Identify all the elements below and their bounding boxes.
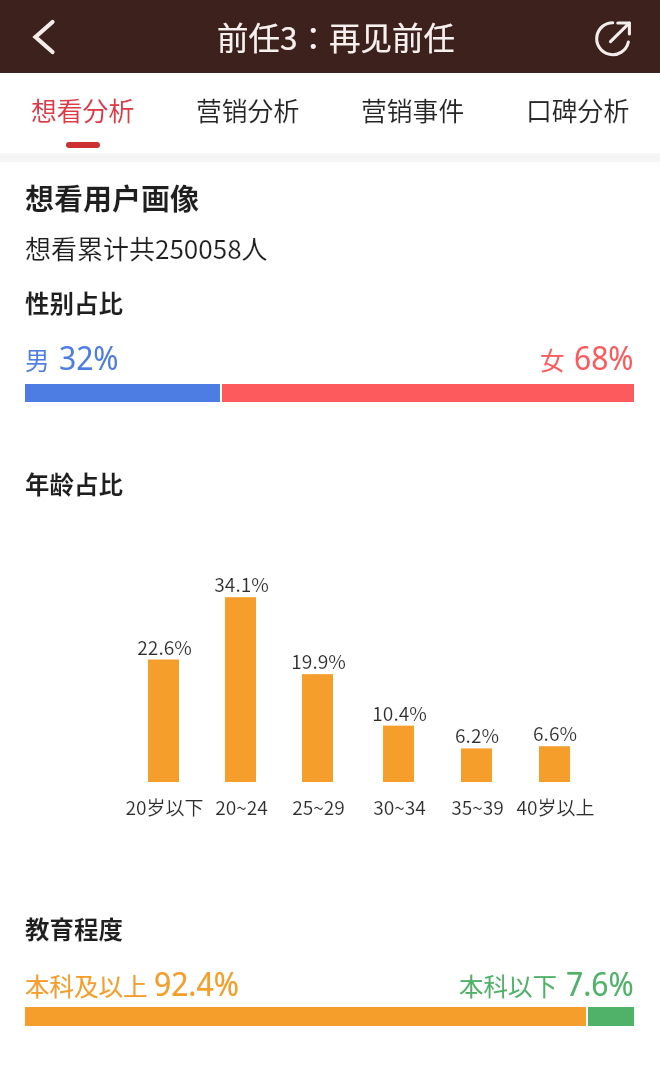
- button[interactable]: Share: [592, 14, 640, 62]
- staticText: 口碑分析: [526, 91, 630, 128]
- staticText: 32%: [59, 336, 119, 380]
- staticText: 10.4%: [372, 699, 427, 727]
- button[interactable]: 口碑分析: [495, 73, 660, 153]
- staticText: 35~39: [451, 793, 504, 821]
- staticText: 30~34: [373, 793, 426, 821]
- staticText: 想看分析: [31, 91, 135, 128]
- staticText: 女: [540, 342, 565, 377]
- button[interactable]: Back: [12, 6, 74, 68]
- staticText: 年龄占比: [25, 466, 123, 501]
- staticText: 想看用户画像: [25, 176, 200, 218]
- staticText: 6.6%: [533, 719, 577, 747]
- button[interactable]: 营销事件: [330, 73, 495, 153]
- staticText: 6.2%: [455, 721, 499, 749]
- staticText: 22.6%: [137, 633, 192, 661]
- staticText: 男: [25, 342, 50, 377]
- staticText: 7.6%: [566, 962, 634, 1006]
- staticText: 20岁以下: [125, 793, 204, 821]
- staticText: 20~24: [215, 793, 268, 821]
- staticText: 92.4%: [154, 962, 239, 1006]
- staticText: 性别占比: [25, 285, 123, 320]
- button[interactable]: 营销分析: [165, 73, 330, 153]
- staticText: 营销分析: [196, 91, 300, 128]
- staticText: 19.9%: [291, 647, 346, 675]
- button[interactable]: 想看分析: [0, 73, 165, 153]
- staticText: 营销事件: [361, 91, 465, 128]
- staticText: 25~29: [292, 793, 345, 821]
- staticText: 34.1%: [214, 570, 269, 598]
- staticText: 前任3：再见前任: [217, 13, 455, 59]
- staticText: 68%: [574, 336, 634, 380]
- staticText: 40岁以上: [516, 793, 595, 821]
- staticText: 想看累计共250058人: [25, 229, 268, 267]
- staticText: 教育程度: [25, 911, 123, 946]
- staticText: 本科及以上: [25, 968, 148, 1003]
- staticText: 本科以下: [459, 968, 557, 1003]
